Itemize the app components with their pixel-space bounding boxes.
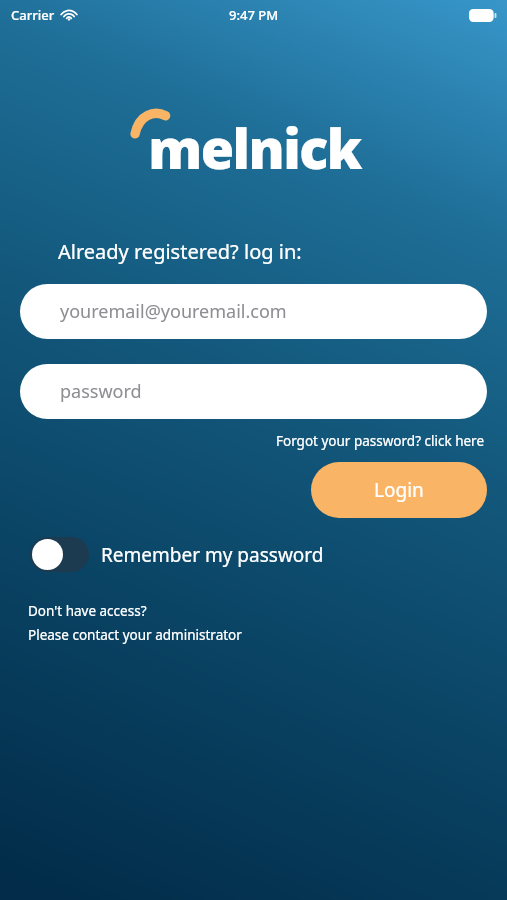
staticText: Please contact your administrator bbox=[28, 626, 242, 644]
staticText: Don't have access? bbox=[28, 602, 147, 620]
staticText: Remember my password bbox=[101, 542, 324, 568]
other: Remember my password toggle bbox=[30, 537, 89, 572]
button[interactable]: password bbox=[20, 364, 487, 419]
button[interactable]: Login bbox=[311, 462, 487, 518]
staticText: melnick bbox=[148, 111, 361, 185]
button[interactable]: Forgot your password? click here bbox=[274, 429, 487, 453]
staticText: Login bbox=[374, 477, 424, 503]
button[interactable]: Remember my password toggle bbox=[30, 537, 324, 572]
button[interactable]: youremail@youremail.com bbox=[20, 284, 487, 339]
staticText: youremail@youremail.com bbox=[60, 299, 287, 324]
staticText: Carrier bbox=[11, 6, 55, 24]
staticText: password bbox=[60, 379, 142, 404]
staticText: Already registered? log in: bbox=[58, 238, 302, 265]
staticText: 9:47 PM bbox=[229, 6, 279, 24]
